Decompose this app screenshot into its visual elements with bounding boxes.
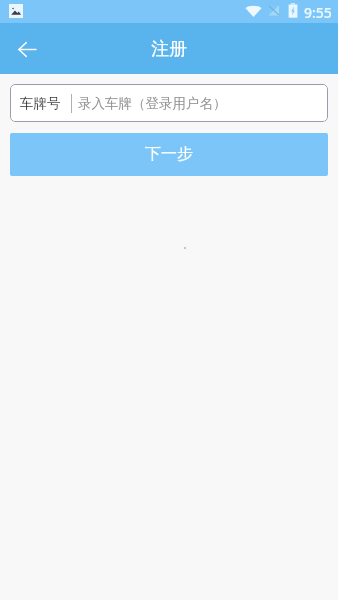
button[interactable]: Back: [0, 23, 52, 74]
button[interactable]: 下一步: [10, 133, 328, 176]
staticText: 录入车牌（登录用户名）: [78, 95, 227, 112]
staticText: 下一步: [145, 144, 193, 164]
staticText: 注册: [151, 38, 187, 61]
staticText: 9:55: [304, 3, 332, 22]
staticText: 车牌号: [20, 95, 61, 112]
button[interactable]: 车牌号: [10, 84, 328, 122]
